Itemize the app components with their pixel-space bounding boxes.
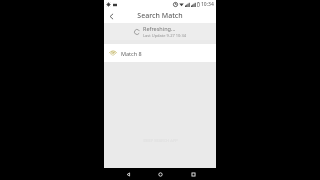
button[interactable]: Back	[119, 168, 137, 180]
button[interactable]: Back	[104, 9, 118, 23]
staticText: 10:34	[201, 1, 214, 8]
button[interactable]: Match 8	[104, 44, 216, 62]
staticText: Match 8	[121, 50, 142, 57]
staticText: Last Update 9-27 10:34	[143, 33, 186, 38]
button[interactable]: Home	[151, 168, 169, 180]
staticText: Refreshing...	[143, 25, 176, 32]
button[interactable]: Refreshing...	[104, 23, 216, 40]
staticText: Search Match	[137, 11, 183, 21]
button[interactable]: Recents	[184, 168, 202, 180]
